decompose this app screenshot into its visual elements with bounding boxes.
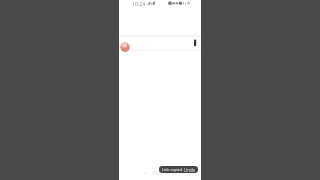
button[interactable]: Voice search xyxy=(119,36,201,50)
staticText: 10:24 xyxy=(132,0,146,6)
button[interactable]: Voice search xyxy=(193,39,197,47)
button[interactable]: Link copied xyxy=(159,166,198,173)
staticText: Undo xyxy=(184,167,196,173)
staticText: Link copied xyxy=(162,167,183,172)
button[interactable]: Account xyxy=(120,42,130,52)
